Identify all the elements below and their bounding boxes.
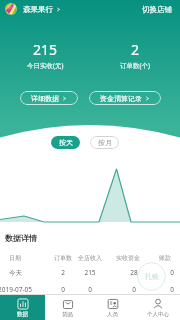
staticText: 按天 <box>59 138 73 147</box>
staticText: 数据详情 <box>5 233 37 243</box>
staticText: 数据 <box>17 311 28 318</box>
staticText: 全店收入 <box>78 254 102 262</box>
staticText: 215 <box>33 40 58 59</box>
staticText: 详细数据 <box>31 94 59 103</box>
staticText: 订单数(个) <box>120 61 150 70</box>
button[interactable]: 个人中心 <box>135 295 180 320</box>
button[interactable]: 森果果行 <box>5 3 61 15</box>
button[interactable]: 详细数据 <box>20 91 78 105</box>
staticText: 0 <box>88 285 92 294</box>
staticText: 个人中心 <box>147 311 169 318</box>
button[interactable]: 货品 <box>45 295 90 320</box>
button[interactable]: 数据 <box>0 295 45 320</box>
button[interactable]: 按月 <box>90 136 119 149</box>
staticText: 账款 <box>159 254 171 262</box>
staticText: 切换店铺 <box>142 5 172 14</box>
button[interactable]: 按天 <box>51 136 80 149</box>
staticText: 资金清算记录 <box>100 94 142 103</box>
staticText: 今日实收(元) <box>27 61 64 70</box>
staticText: 按月 <box>98 138 112 147</box>
staticText: 实收资金 <box>116 254 140 262</box>
staticText: 0 <box>170 285 174 294</box>
staticText: 28 <box>130 268 138 277</box>
button[interactable]: 人员 <box>90 295 135 320</box>
staticText: 货品 <box>62 311 73 318</box>
staticText: 扎账 <box>145 272 159 281</box>
staticText: 订单数 <box>54 254 72 262</box>
staticText: 0 <box>170 268 174 277</box>
staticText: 0 <box>132 285 136 294</box>
staticText: 215 <box>84 268 96 277</box>
staticText: 2 <box>131 40 140 59</box>
button[interactable]: 切换店铺 <box>139 3 175 16</box>
button[interactable]: 资金清算记录 <box>89 91 161 105</box>
staticText: 日期 <box>9 254 21 262</box>
staticText: 2019-07-05 <box>0 285 32 294</box>
staticText: 0 <box>61 285 65 294</box>
staticText: 2 <box>61 268 65 277</box>
staticText: 人员 <box>107 311 118 318</box>
staticText: 今天 <box>9 269 22 277</box>
staticText: 森果果行 <box>23 5 53 14</box>
